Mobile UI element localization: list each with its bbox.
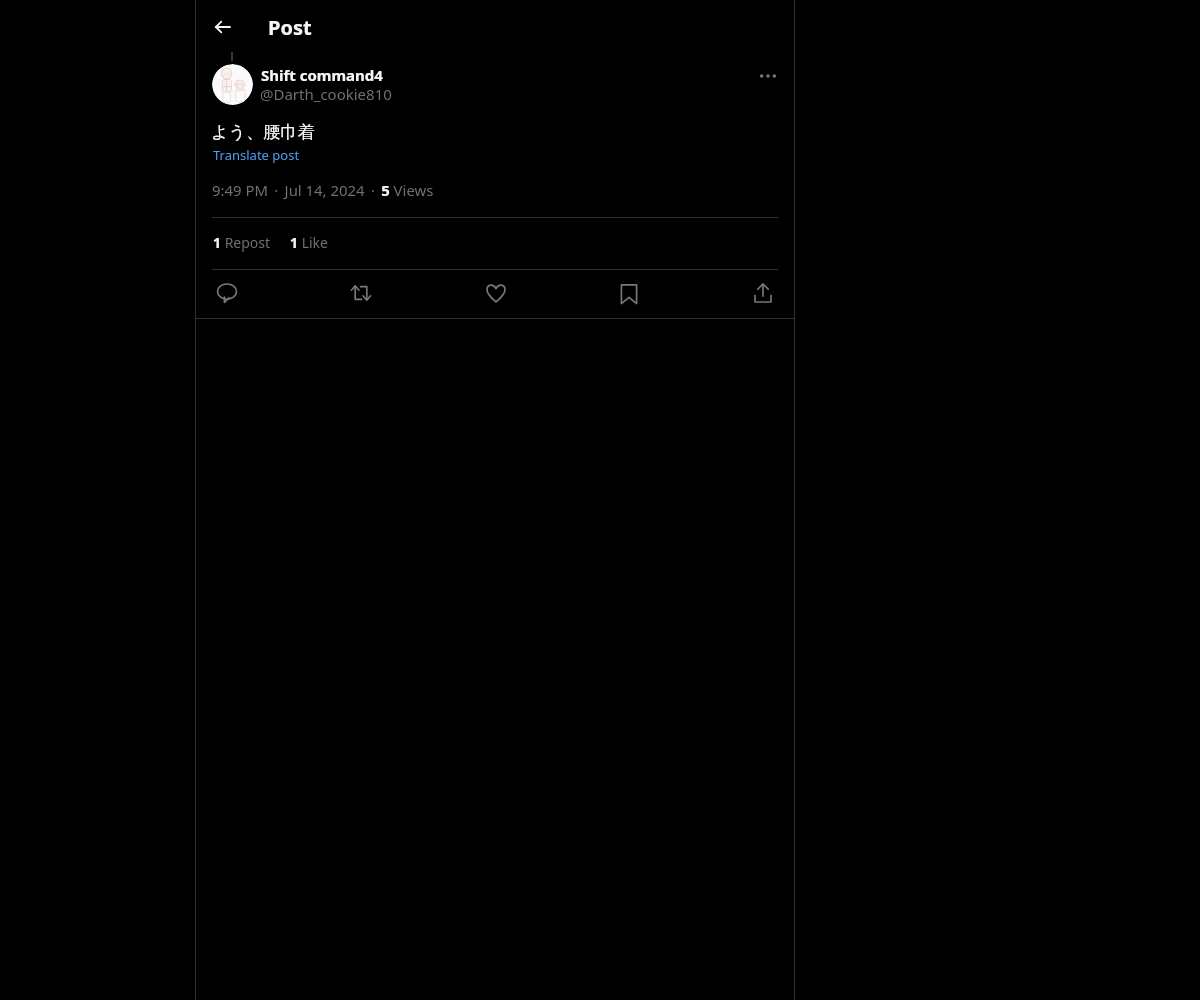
staticText: @Darth_cookie810: [260, 84, 392, 104]
button[interactable]: Repost: [344, 276, 378, 310]
button[interactable]: 1 Repost: [210, 229, 268, 253]
button[interactable]: Bookmark: [612, 277, 646, 311]
staticText: よう、腰巾着: [211, 121, 315, 143]
button[interactable]: Profile picture: [212, 64, 253, 105]
button[interactable]: Reply: [210, 276, 244, 310]
staticText: 9:49 PM · Jul 14, 2024 · 5 Views: [212, 180, 434, 200]
button[interactable]: More options: [751, 59, 785, 93]
staticText: 1 Repost: [213, 233, 271, 252]
staticText: Post: [268, 14, 312, 41]
button[interactable]: Translate post: [212, 143, 299, 162]
staticText: 1 Like: [290, 233, 328, 252]
staticText: Shift command4: [261, 65, 383, 85]
button[interactable]: Back: [203, 8, 241, 46]
button[interactable]: 1 Like: [287, 229, 325, 253]
staticText: Translate post: [213, 146, 300, 164]
button[interactable]: Share: [746, 276, 780, 310]
button[interactable]: Like: [479, 276, 513, 310]
